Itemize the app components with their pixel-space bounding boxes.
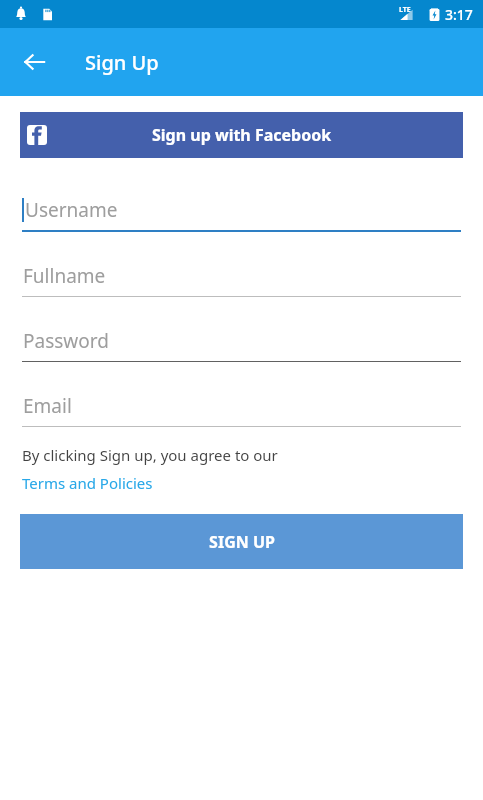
staticText: LTE <box>399 5 411 15</box>
button[interactable]: Fullname <box>22 261 461 297</box>
button[interactable]: Terms and Policies <box>22 473 153 493</box>
button[interactable]: Back <box>11 38 59 86</box>
staticText: SIGN UP <box>209 531 275 553</box>
button[interactable]: Email <box>22 391 461 427</box>
button[interactable]: Username <box>22 195 461 232</box>
button[interactable]: Sign up with Facebook <box>20 112 463 158</box>
staticText: Password <box>23 328 109 354</box>
button[interactable]: SIGN UP <box>20 514 463 569</box>
staticText: Sign up with Facebook <box>152 124 332 146</box>
staticText: Sign Up <box>85 49 159 76</box>
staticText: Username <box>25 197 118 223</box>
button[interactable]: Password <box>22 326 461 362</box>
staticText: 3:17 <box>445 5 473 24</box>
staticText: By clicking Sign up, you agree to our <box>22 445 278 465</box>
staticText: Fullname <box>23 263 106 289</box>
staticText: Email <box>23 393 72 419</box>
staticText: Terms and Policies <box>22 473 153 493</box>
